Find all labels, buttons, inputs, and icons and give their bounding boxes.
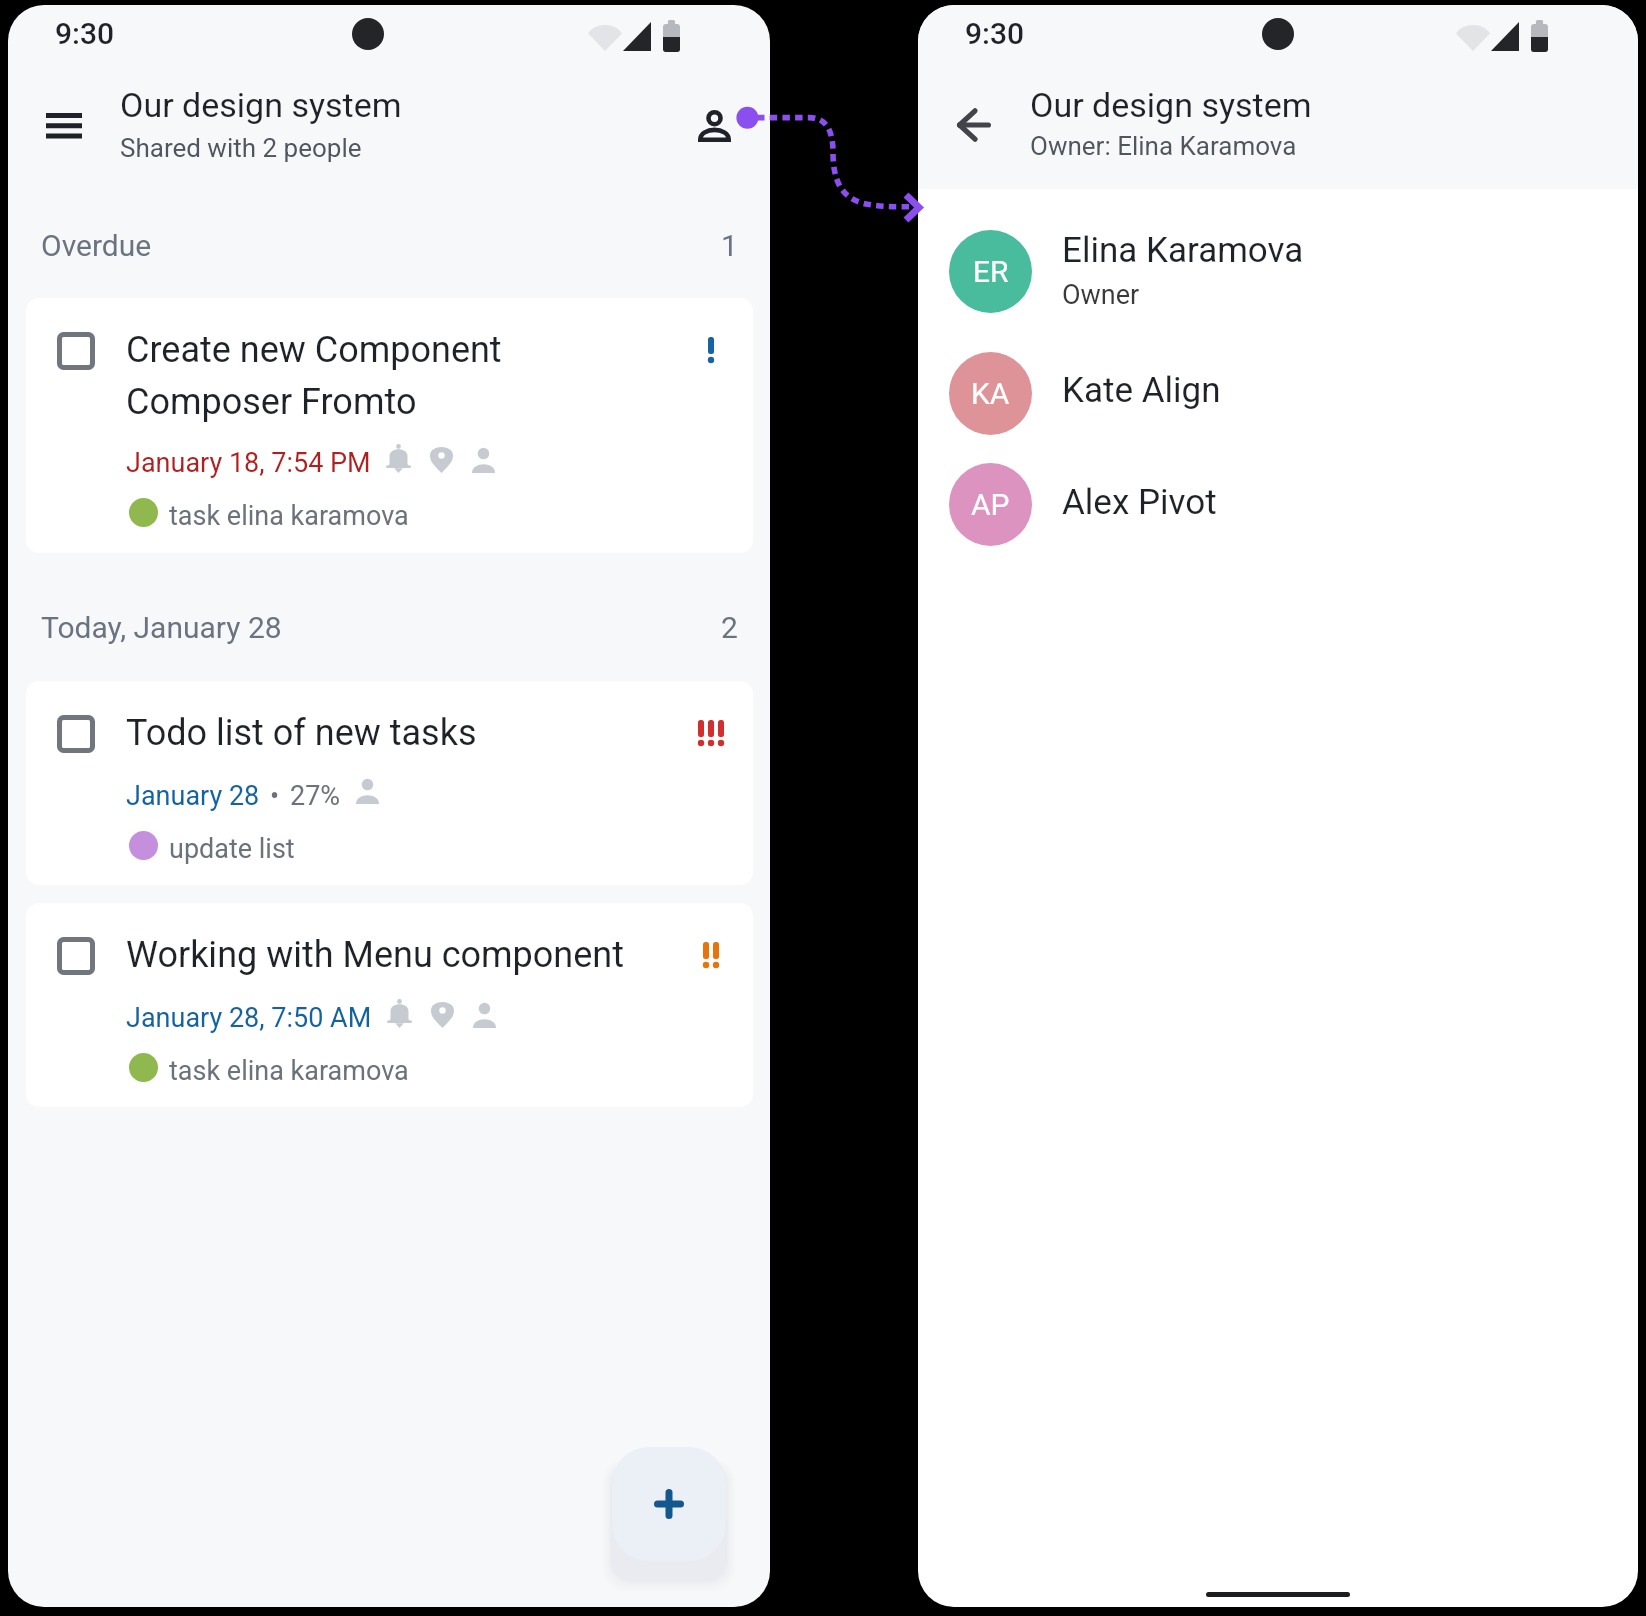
staticText: update list (169, 833, 295, 865)
staticText: • (270, 780, 280, 812)
staticText: 27% (290, 780, 341, 812)
staticText: Our design system (1030, 85, 1312, 125)
staticText: January 28 (126, 780, 260, 812)
staticText: KA (971, 376, 1010, 411)
staticText: Todo list of new tasks (126, 712, 477, 754)
staticText: Create new Component Composer Fromto (126, 329, 502, 423)
button[interactable]: ER (918, 216, 1638, 328)
staticText: January 18, 7:54 PM (126, 447, 371, 479)
staticText: 9:30 (965, 16, 1025, 51)
staticText: Overdue (41, 228, 152, 263)
staticText: 9:30 (55, 16, 115, 51)
staticText: Shared with 2 people (120, 133, 362, 163)
staticText: January 28, 7:50 AM (126, 1002, 372, 1034)
staticText: Working with Menu component (126, 934, 624, 976)
staticText: task elina karamova (169, 500, 409, 532)
staticText: Owner (1062, 279, 1140, 311)
button[interactable]: Add task (612, 1447, 726, 1561)
staticText: Owner: Elina Karamova (1030, 131, 1297, 161)
staticText: AP (971, 487, 1010, 522)
button[interactable]: KA (918, 338, 1638, 450)
button[interactable]: Create new Component Composer Fromto (26, 298, 753, 553)
button[interactable]: Todo list of new tasks (26, 681, 753, 885)
staticText: Elina Karamova (1062, 230, 1304, 271)
staticText: 2 (721, 610, 738, 645)
staticText: 1 (721, 228, 738, 263)
staticText: Today, January 28 (41, 610, 282, 645)
staticText: ER (973, 254, 1009, 289)
staticText: task elina karamova (169, 1055, 409, 1087)
button[interactable]: Working with Menu component (26, 903, 753, 1107)
staticText: Kate Align (1062, 370, 1221, 411)
button[interactable]: Menu (25, 91, 103, 163)
staticText: Our design system (120, 85, 402, 125)
button[interactable]: AP (918, 449, 1638, 561)
button[interactable]: Back (936, 89, 1012, 161)
staticText: Alex Pivot (1062, 482, 1217, 523)
button[interactable]: People (697, 109, 731, 142)
